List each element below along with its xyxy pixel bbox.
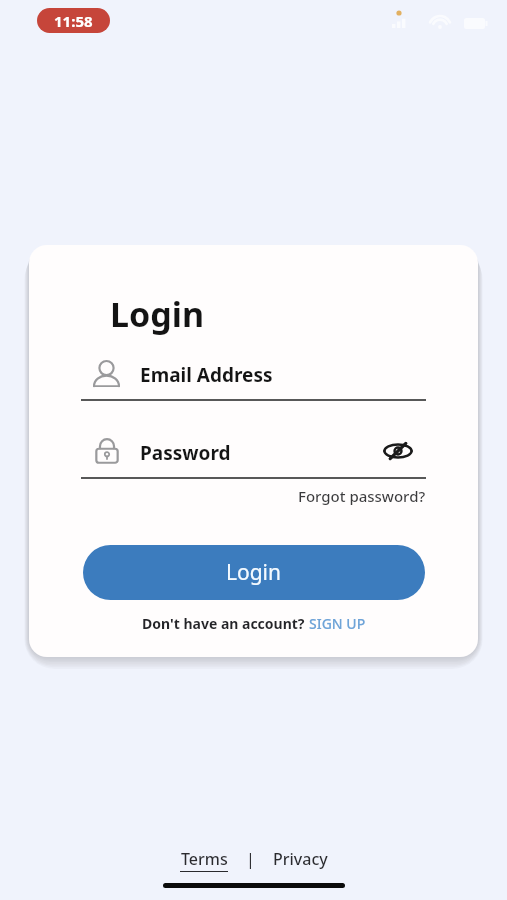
staticText: Forgot password? [298, 486, 426, 506]
staticText: Privacy [273, 848, 328, 870]
staticText: 11:58 [54, 11, 93, 31]
button[interactable]: SIGN UP [309, 614, 366, 633]
staticText: Login [110, 291, 205, 337]
staticText: Password [140, 440, 231, 466]
staticText: Terms [181, 848, 228, 870]
button[interactable]: Login [83, 545, 425, 600]
staticText: Don't have an account? [142, 614, 309, 633]
button[interactable]: Forgot password? [189, 483, 426, 509]
staticText: Login [226, 558, 282, 587]
button[interactable]: Show password [381, 437, 415, 465]
staticText: SIGN UP [309, 614, 366, 633]
button[interactable]: Privacy [273, 848, 328, 870]
button[interactable]: Password [81, 431, 426, 479]
staticText: | [246, 848, 255, 870]
button[interactable]: Email Address [81, 353, 426, 401]
button[interactable]: Terms [180, 848, 228, 871]
staticText: Email Address [140, 362, 273, 388]
